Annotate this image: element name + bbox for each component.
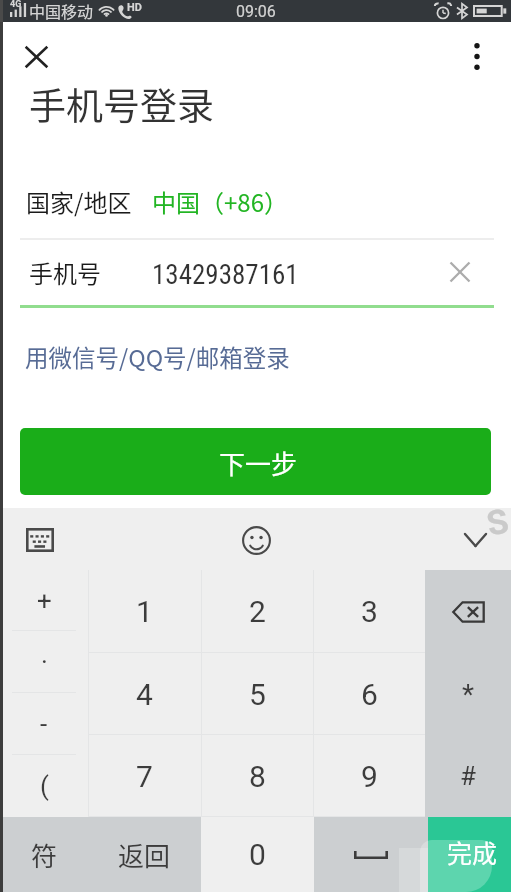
button[interactable]: 2 [201,570,313,653]
staticText: 6 [361,677,378,712]
staticText: + [37,586,52,616]
staticText: # [460,761,477,791]
staticText: 13429387161 [152,259,299,291]
staticText: 中国（+86） [152,184,288,219]
button[interactable]: 4 [88,653,201,735]
button[interactable]: 7 [88,735,201,817]
staticText: 国家/地区 [26,184,132,219]
staticText: 返回 [118,836,171,874]
button[interactable]: 国家/地区 [0,177,511,225]
button[interactable]: 1 [88,570,201,653]
button[interactable]: 用微信号/QQ号/邮箱登录 [25,340,290,374]
staticText: 8 [249,759,266,794]
button[interactable]: 5 [201,653,313,735]
button[interactable]: # [425,735,511,817]
button[interactable]: Keyboard settings [18,518,62,562]
button[interactable]: Space [314,817,428,892]
button[interactable]: Backspace [425,570,511,653]
staticText: 5 [249,677,266,712]
button[interactable]: 0 [201,817,314,892]
staticText: 下一步 [219,444,298,482]
button[interactable]: 8 [201,735,313,817]
staticText: 手机号登录 [29,77,214,131]
staticText: 2 [249,594,266,629]
button[interactable]: 完成 [428,817,511,892]
staticText: 1 [136,594,153,629]
button[interactable]: More options [451,30,503,82]
button[interactable]: 返回 [88,817,201,892]
staticText: 4G [10,0,22,10]
button[interactable]: - [0,693,88,755]
button[interactable]: Close [10,30,63,83]
button[interactable]: 符 [0,817,88,892]
staticText: 3 [361,594,378,629]
staticText: 09:06 [236,2,276,21]
staticText: ( [40,771,49,801]
staticText: 符 [31,836,58,874]
staticText: · [41,647,48,677]
button[interactable]: Emoji [234,518,279,563]
staticText: - [40,709,48,739]
button[interactable]: 6 [313,653,425,735]
staticText: 0 [249,837,266,872]
button[interactable]: * [425,653,511,735]
button[interactable]: Hide keyboard [453,518,497,562]
staticText: 7 [136,759,153,794]
button[interactable]: 3 [313,570,425,653]
staticText: 中国移动 [29,0,94,21]
staticText: * [462,678,475,711]
button[interactable]: ( [0,755,88,817]
staticText: 完成 [447,834,498,870]
staticText: 9 [361,759,378,794]
staticText: S [483,500,511,544]
button[interactable]: 下一步 [20,428,491,495]
button[interactable]: Clear [440,252,480,292]
staticText: HD [127,1,142,14]
staticText: 手机号 [29,255,101,290]
button[interactable]: 9 [313,735,425,817]
button[interactable]: · [0,631,88,693]
button[interactable]: + [0,570,88,631]
staticText: 4 [136,677,153,712]
